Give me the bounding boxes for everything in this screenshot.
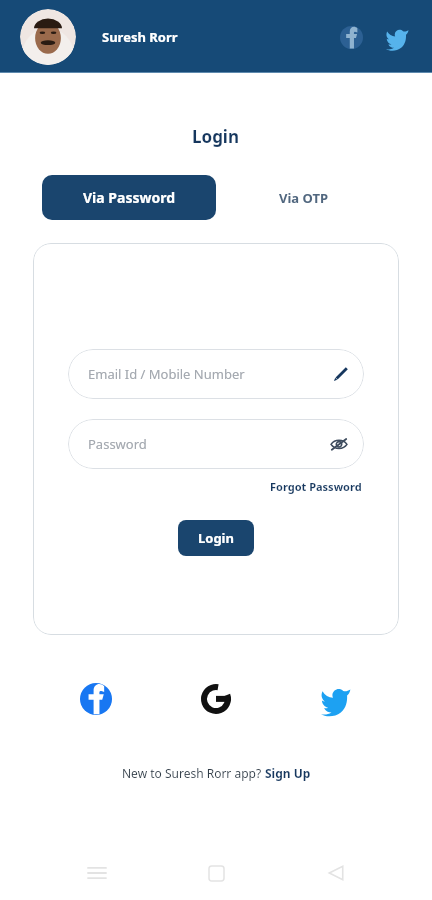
staticText: Via Password [83, 188, 176, 207]
button[interactable]: Twitter [382, 22, 412, 52]
staticText: Login [192, 125, 240, 148]
button[interactable]: Facebook [336, 22, 366, 52]
button[interactable]: Recent apps [74, 850, 120, 896]
button[interactable]: Via OTP [216, 175, 390, 220]
button[interactable]: Sign in with Google [196, 679, 236, 719]
button[interactable]: Home [193, 850, 239, 896]
staticText: New to Suresh Rorr app? [122, 765, 265, 781]
staticText: Sign Up [265, 765, 311, 781]
button[interactable]: Forgot Password [268, 477, 364, 496]
button[interactable]: Login [178, 520, 254, 556]
staticText: Login [198, 529, 234, 547]
button[interactable]: Email Id / Mobile Number [68, 349, 364, 399]
button[interactable]: Back [313, 850, 359, 896]
staticText: Suresh Rorr [102, 28, 178, 46]
button[interactable]: Profile photo [20, 9, 76, 65]
button[interactable]: Password [68, 419, 364, 469]
staticText: Forgot Password [270, 479, 362, 494]
staticText: Email Id / Mobile Number [88, 365, 245, 383]
button[interactable]: Via Password [42, 175, 216, 220]
button[interactable]: Sign Up [265, 765, 311, 781]
button[interactable]: Sign in with Facebook [76, 679, 116, 719]
button[interactable]: Sign in with Twitter [316, 679, 356, 719]
staticText: Via OTP [279, 189, 328, 207]
staticText: Password [88, 435, 147, 453]
